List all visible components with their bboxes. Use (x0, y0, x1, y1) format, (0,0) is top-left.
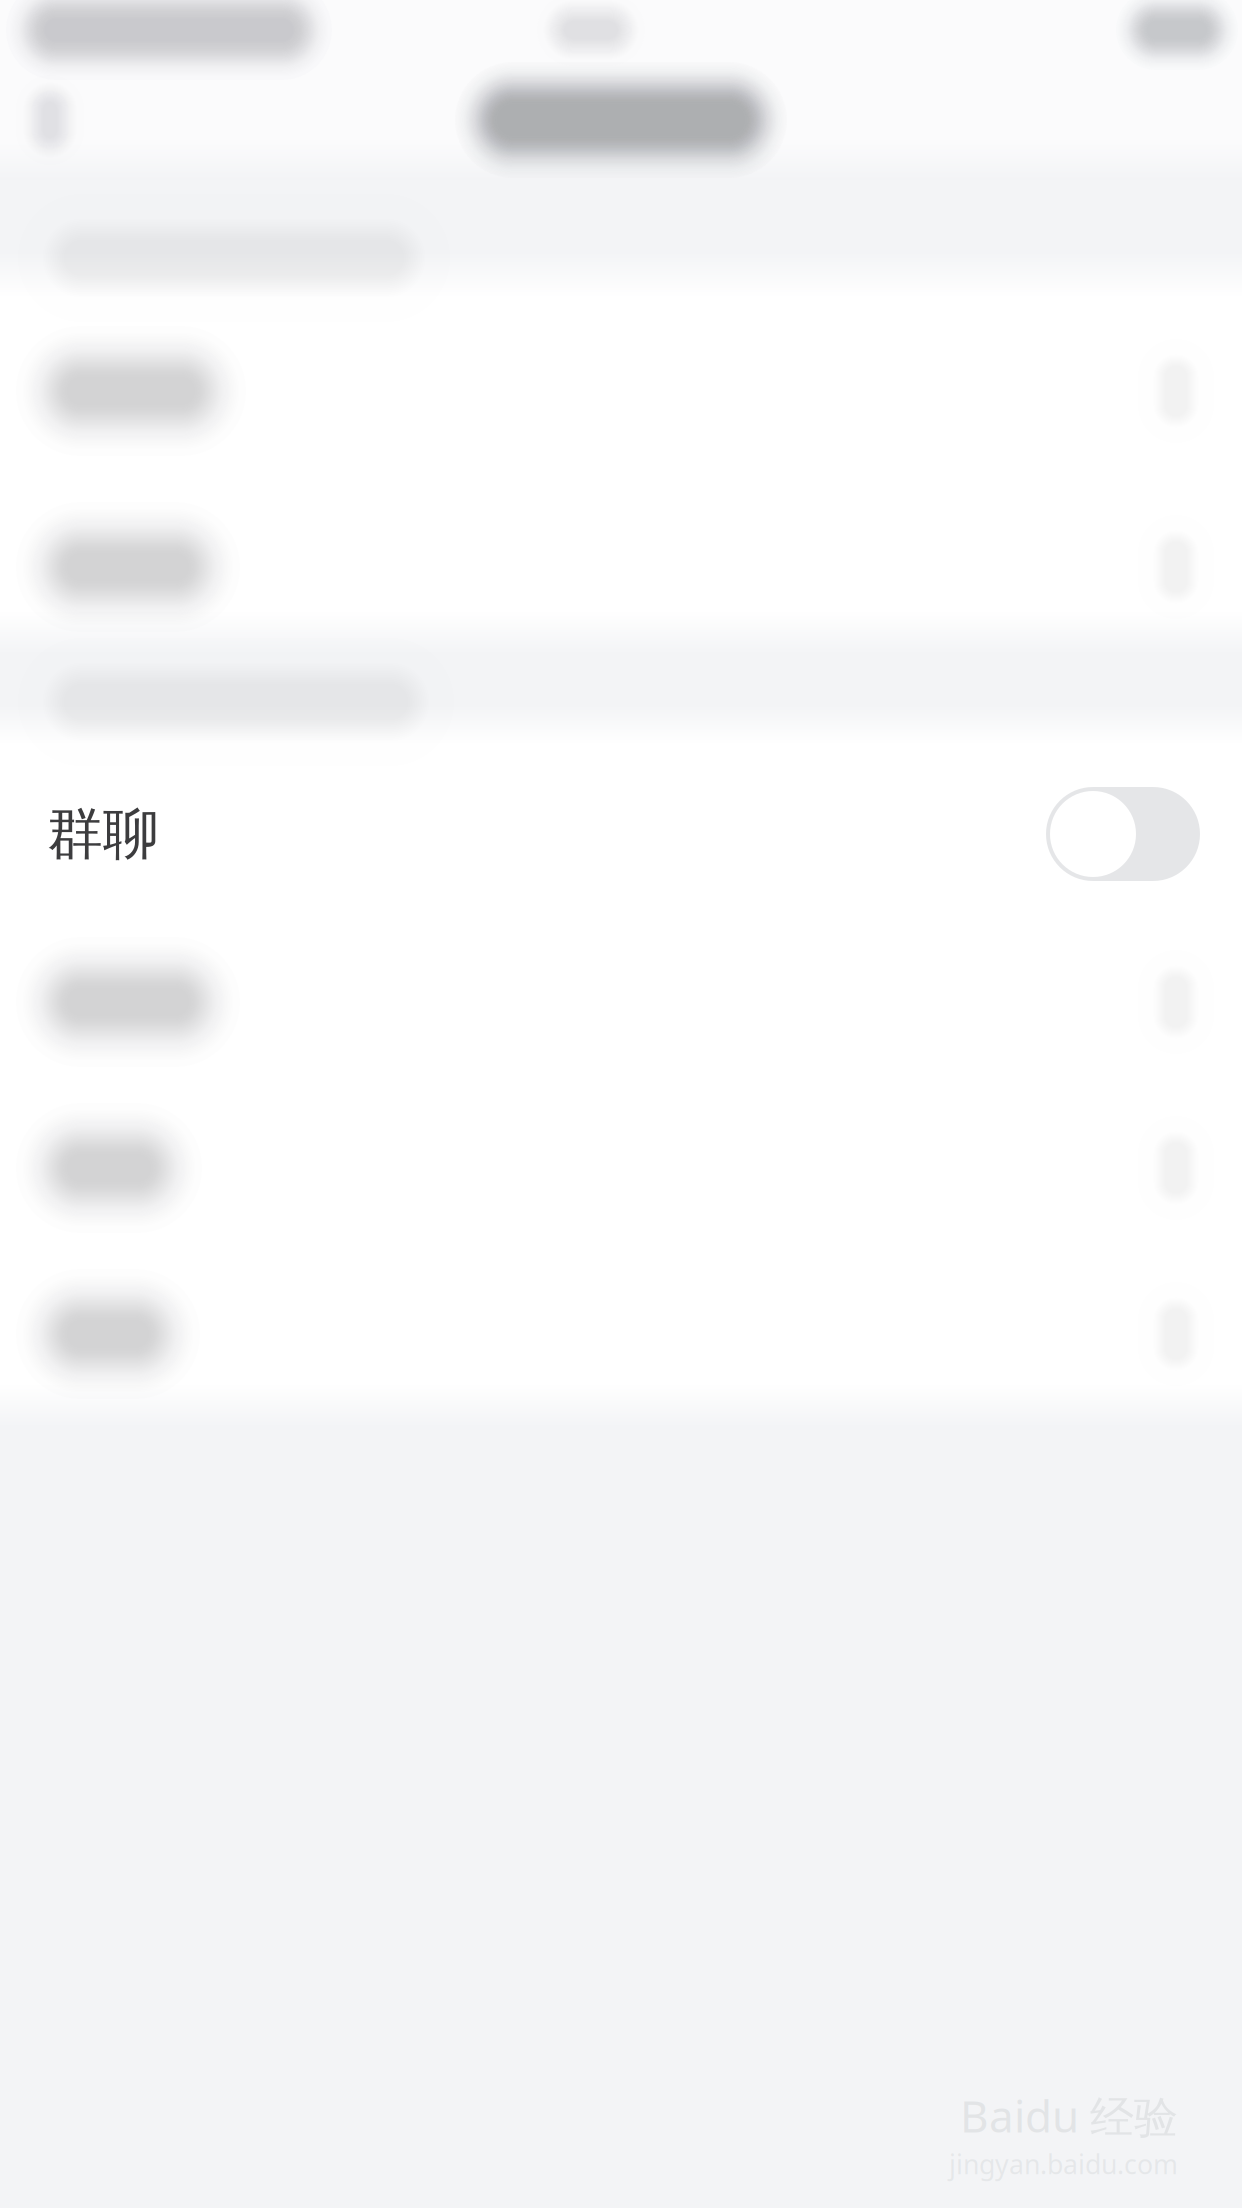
staticText: 群聊 (47, 799, 159, 869)
button[interactable]: 设置项 4 (0, 1086, 1242, 1254)
button[interactable]: 设置项 3 (0, 918, 1242, 1086)
button[interactable]: Back (16, 75, 84, 165)
staticText: Baidu 经验 (960, 2086, 1178, 2146)
button[interactable]: 设置项 1 (0, 298, 1242, 476)
button[interactable]: 群聊 (1046, 787, 1200, 881)
button[interactable]: 设置项 2 (0, 476, 1242, 654)
button[interactable]: 设置项 5 (0, 1254, 1242, 1422)
staticText: jingyan.baidu.com (949, 2146, 1178, 2182)
